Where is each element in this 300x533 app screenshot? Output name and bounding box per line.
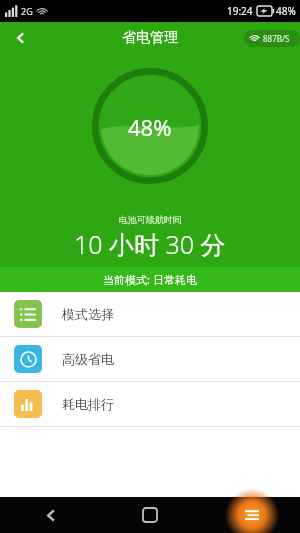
staticText: 887B/S (263, 33, 290, 44)
staticText: 48% (128, 112, 172, 142)
button[interactable]: 高级省电 (0, 337, 300, 381)
staticText: 当前模式: 日常耗电 (103, 272, 197, 287)
staticText: 19:24 (227, 4, 253, 18)
button[interactable]: 当前模式: 日常耗电 (0, 267, 300, 292)
button[interactable]: Menu (234, 497, 270, 533)
staticText: 2G (21, 5, 33, 17)
staticText: 省电管理 (122, 29, 178, 47)
button[interactable]: 模式选择 (0, 292, 300, 336)
button[interactable]: Back (6, 23, 36, 53)
button[interactable]: 耗电排行 (0, 382, 300, 426)
staticText: 10 小时 30 分 (74, 227, 226, 261)
staticText: 模式选择 (62, 306, 114, 322)
button[interactable]: 887B/S (244, 30, 300, 47)
staticText: 高级省电 (62, 351, 114, 367)
staticText: 48% (276, 4, 296, 18)
button[interactable]: Back (34, 498, 68, 532)
button[interactable]: Home (133, 498, 167, 532)
staticText: 电池可续航时间 (119, 214, 182, 225)
staticText: 耗电排行 (62, 396, 114, 412)
